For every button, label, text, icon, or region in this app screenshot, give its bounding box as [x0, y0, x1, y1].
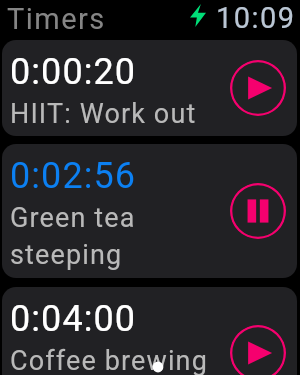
button[interactable]: Pause timer	[230, 183, 286, 239]
staticText: 0:02:56	[10, 155, 137, 197]
staticText: 0:04:00	[10, 298, 137, 340]
staticText: Timers	[7, 2, 106, 36]
button[interactable]: Start timer	[230, 60, 286, 116]
button[interactable]: 0:00:20	[2, 40, 297, 136]
staticText: 10:09	[216, 1, 296, 35]
staticText: HIIT: Work out	[10, 98, 197, 130]
staticText: Coffee brewing	[10, 345, 208, 375]
button[interactable]: 0:04:00	[2, 287, 297, 375]
button[interactable]: 0:02:56	[2, 144, 297, 278]
staticText: 0:00:20	[10, 51, 137, 93]
button[interactable]: Start timer	[230, 325, 286, 375]
staticText: Green tea steeping	[10, 202, 136, 270]
